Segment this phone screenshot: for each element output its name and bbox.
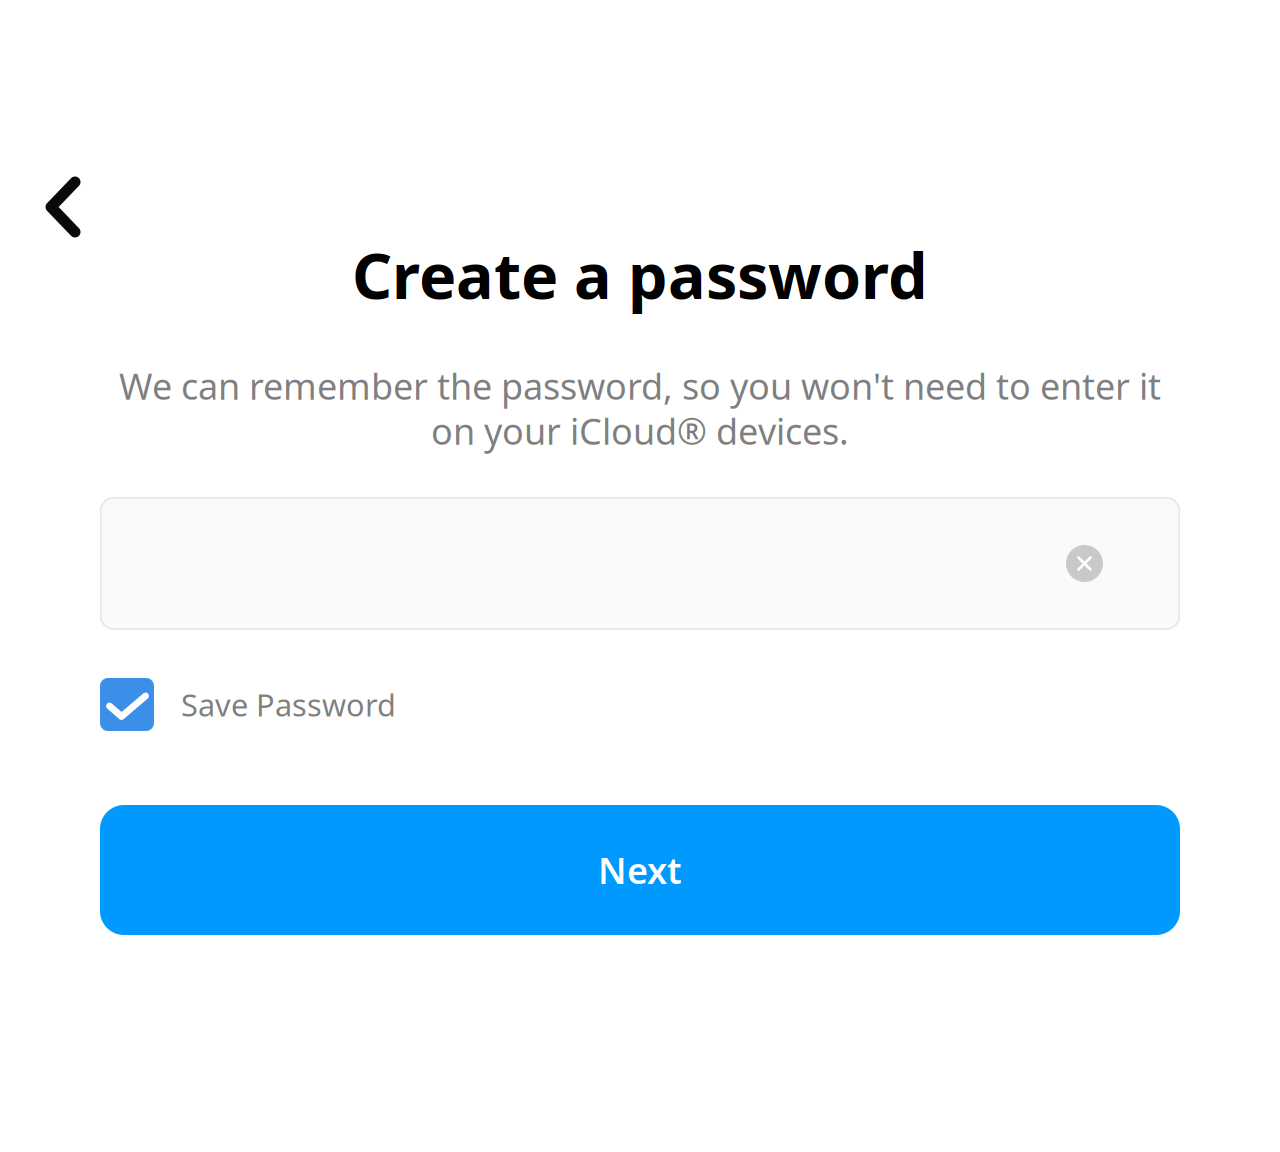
staticText: on your iCloud® devices.	[431, 407, 849, 455]
button[interactable]: Back	[19, 163, 107, 251]
button[interactable]: Password	[100, 497, 1180, 630]
button[interactable]: Save Password	[100, 678, 396, 731]
staticText: Next	[598, 846, 682, 894]
button[interactable]: Clear text	[1066, 545, 1103, 582]
button[interactable]: Next	[100, 805, 1180, 935]
staticText: Save Password	[181, 684, 396, 725]
staticText: Create a password	[352, 233, 928, 316]
staticText: We can remember the password, so you won…	[119, 362, 1161, 410]
